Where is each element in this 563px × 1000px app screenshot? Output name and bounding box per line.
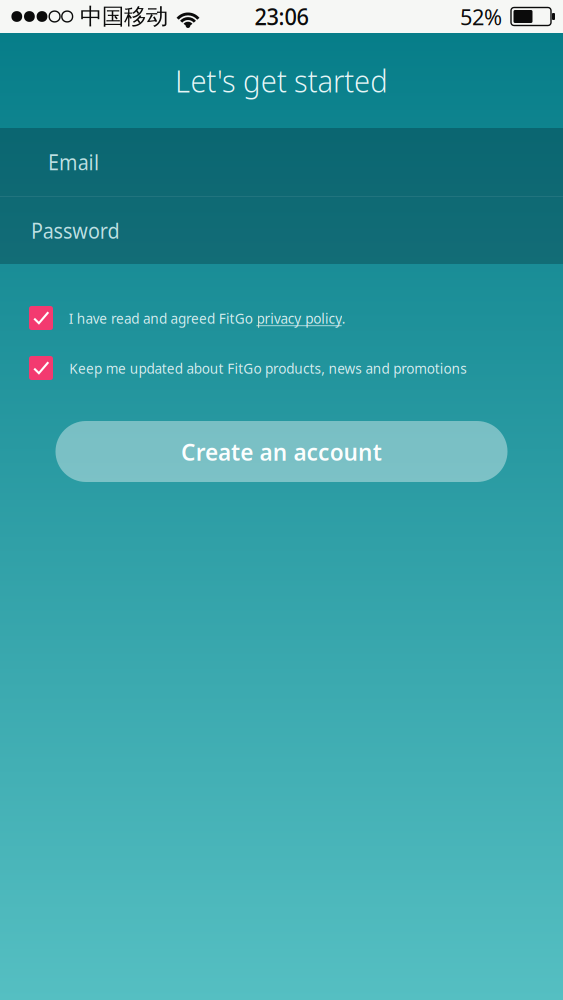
staticText: 23:06: [250, 0, 313, 33]
staticText: 中国移动: [74, 1, 174, 32]
button[interactable]: Keep me updated about FitGo products, ne…: [0, 343, 563, 393]
staticText: Create an account: [151, 432, 412, 471]
staticText: Let's get started: [150, 57, 413, 104]
button[interactable]: I have read and agreed FitGo privacy pol…: [0, 293, 563, 343]
staticText: Password: [31, 214, 145, 247]
button[interactable]: Password: [0, 197, 563, 264]
button[interactable]: Create an account: [55, 421, 507, 482]
staticText: Keep me updated about FitGo products, ne…: [0, 356, 541, 380]
staticText: 52%: [456, 0, 505, 33]
button[interactable]: Email: [0, 128, 563, 196]
staticText: Email: [48, 145, 114, 179]
staticText: I have read and agreed FitGo privacy pol…: [17, 306, 397, 330]
